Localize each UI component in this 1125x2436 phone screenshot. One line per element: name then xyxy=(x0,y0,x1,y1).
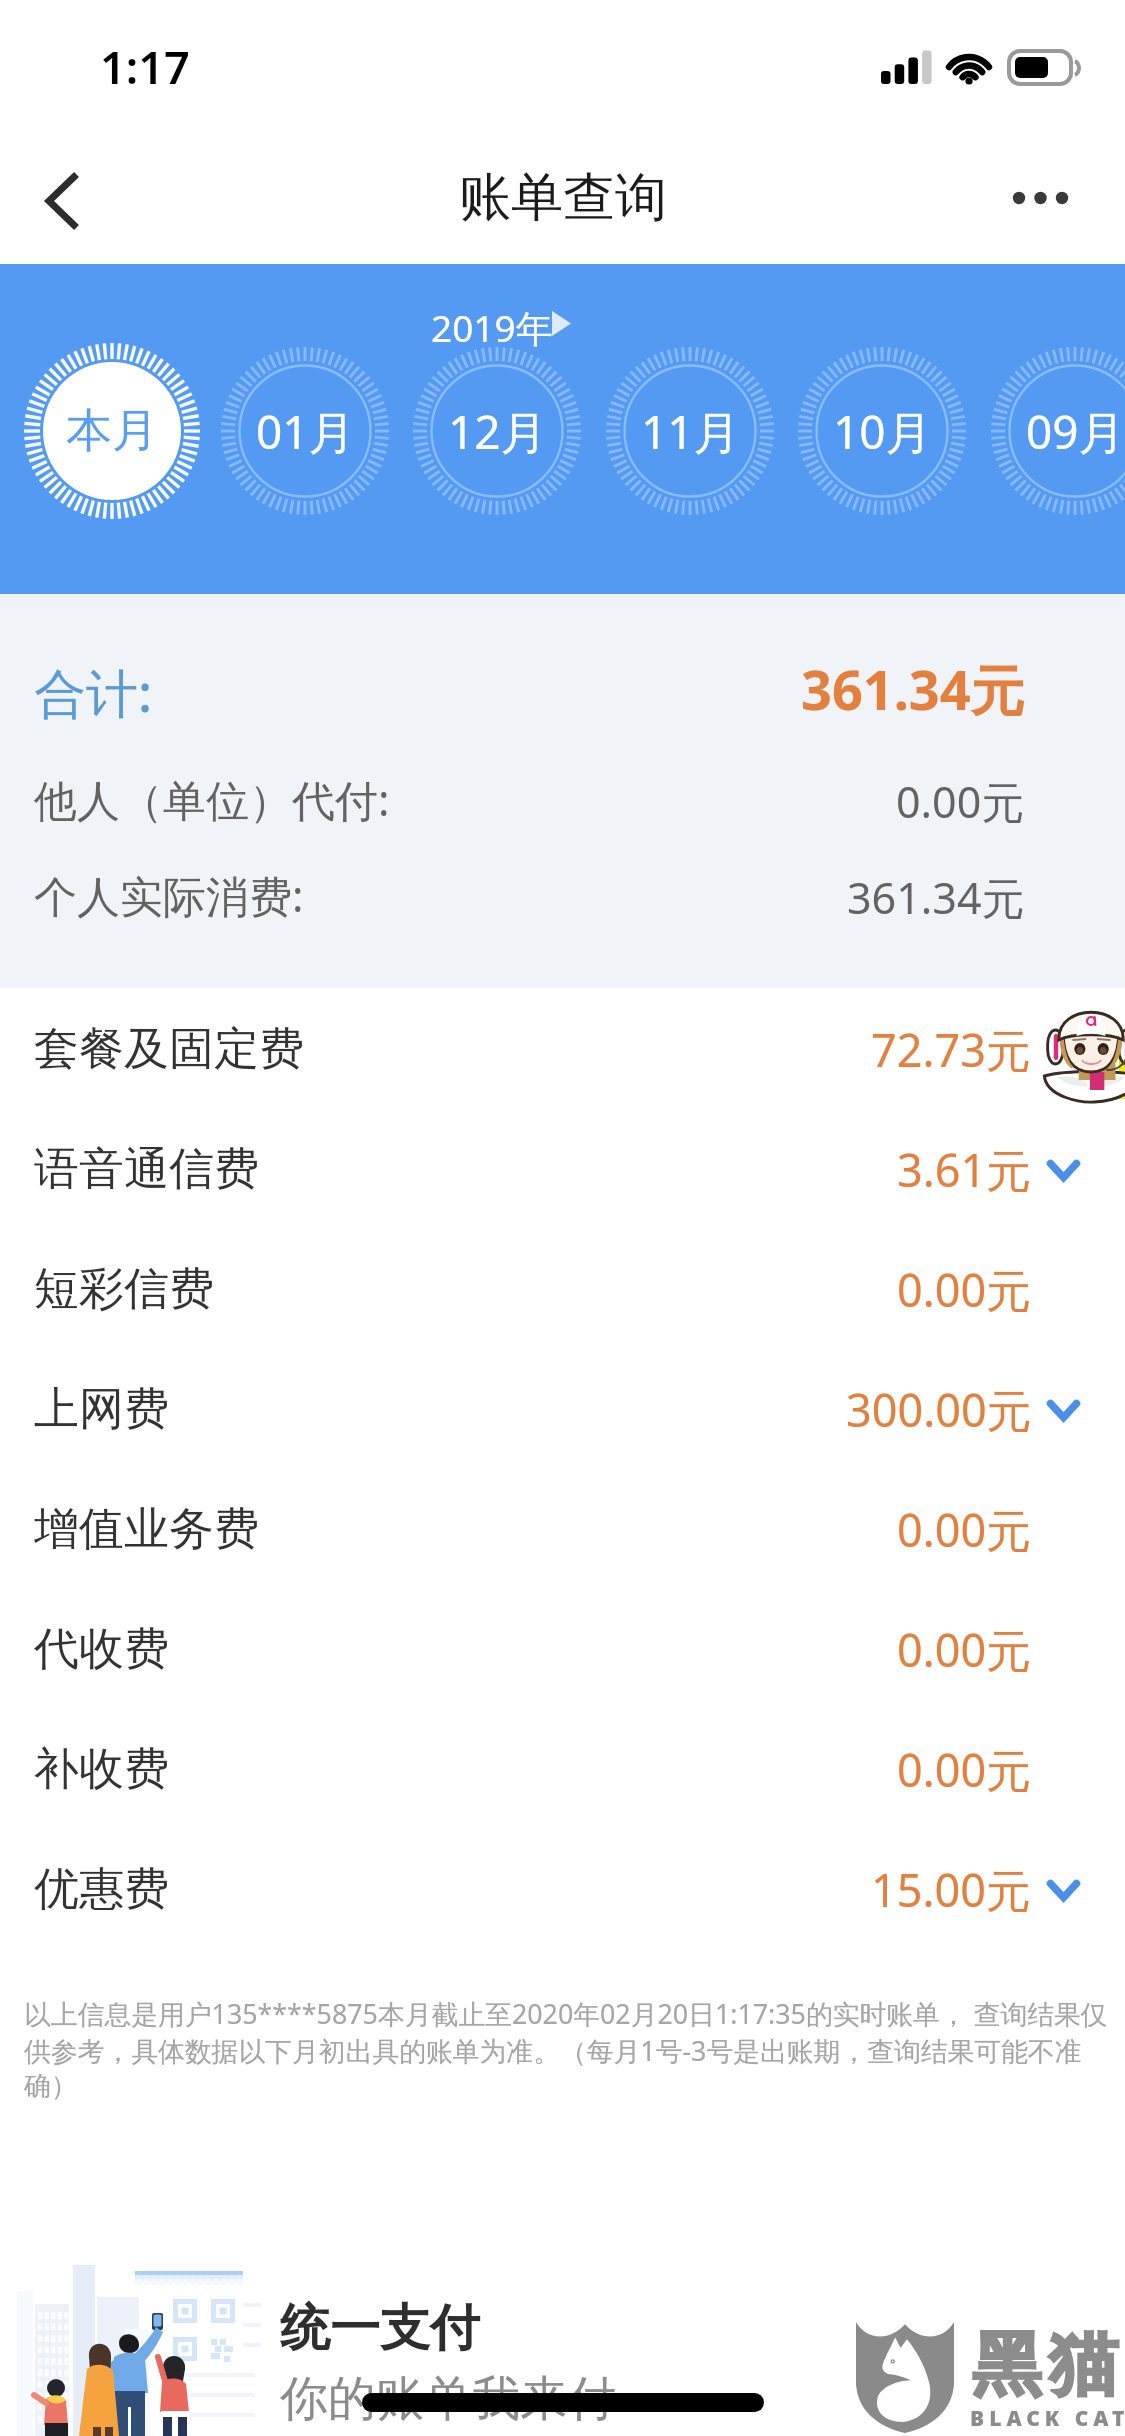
staticText: 合计: xyxy=(34,656,153,727)
button[interactable]: 11月 xyxy=(597,338,783,524)
staticText: 黑猫 xyxy=(968,2322,1122,2409)
staticText: 0.00元 xyxy=(897,1619,1032,1680)
staticText: 12月 xyxy=(448,400,547,463)
button[interactable]: Back xyxy=(0,132,130,264)
button[interactable]: 语音通信费 xyxy=(0,1109,1125,1229)
staticText: 上网费 xyxy=(34,1381,169,1438)
staticText: 语音通信费 xyxy=(34,1141,259,1198)
staticText: 0.00元 xyxy=(897,1739,1032,1800)
staticText: BLACK CAT xyxy=(970,2404,1125,2433)
staticText: 本月 xyxy=(66,402,158,460)
staticText: 代收费 xyxy=(34,1621,169,1678)
button[interactable]: 12月 xyxy=(404,338,590,524)
staticText: 300.00元 xyxy=(846,1379,1032,1440)
button[interactable]: 短彩信费 xyxy=(0,1229,1125,1349)
button[interactable]: 补收费 xyxy=(0,1709,1125,1829)
button[interactable]: 09月 xyxy=(982,338,1125,524)
staticText: 短彩信费 xyxy=(34,1261,214,1318)
button[interactable]: 优惠费 xyxy=(0,1829,1125,1949)
staticText: 确） xyxy=(24,2069,78,2103)
staticText: 0.00元 xyxy=(896,772,1025,831)
button[interactable]: 2019年 xyxy=(418,286,586,356)
staticText: 10月 xyxy=(833,400,932,463)
staticText: 11月 xyxy=(641,400,740,463)
staticText: 你的账单我来付 xyxy=(280,2369,616,2429)
staticText: 个人实际消费: xyxy=(34,866,304,925)
staticText: 0.00元 xyxy=(897,1499,1032,1560)
button[interactable]: 套餐及固定费 xyxy=(0,989,1125,1109)
staticText: 优惠费 xyxy=(34,1861,169,1918)
staticText: 增值业务费 xyxy=(34,1501,259,1558)
staticText: 补收费 xyxy=(34,1741,169,1798)
staticText: 统一支付 xyxy=(280,2297,480,2360)
button[interactable]: 代收费 xyxy=(0,1589,1125,1709)
button[interactable]: More options xyxy=(988,158,1094,238)
button[interactable]: 统一支付 xyxy=(0,2240,1125,2436)
staticText: 套餐及固定费 xyxy=(34,1021,304,1078)
staticText: 供参考，具体数据以下月初出具的账单为准。（每月1号-3号是出账期，查询结果可能不… xyxy=(24,2032,1082,2069)
button[interactable]: 上网费 xyxy=(0,1349,1125,1469)
staticText: 72.73元 xyxy=(871,1019,1032,1080)
button[interactable]: 10月 xyxy=(789,338,975,524)
staticText: 账单查询 xyxy=(459,165,667,231)
staticText: 01月 xyxy=(256,400,355,463)
staticText: 09月 xyxy=(1026,400,1125,463)
staticText: 3.61元 xyxy=(897,1139,1032,1200)
staticText: 15.00元 xyxy=(871,1859,1032,1920)
staticText: 2019年 xyxy=(431,302,553,353)
button[interactable]: 增值业务费 xyxy=(0,1469,1125,1589)
button[interactable]: 01月 xyxy=(212,338,398,524)
staticText: 361.34元 xyxy=(801,652,1025,726)
staticText: 1:17 xyxy=(100,36,190,97)
staticText: 0.00元 xyxy=(897,1259,1032,1320)
staticText: 361.34元 xyxy=(847,868,1025,927)
staticText: 以上信息是用户135****5875本月截止至2020年02月20日1:17:3… xyxy=(24,1995,1108,2032)
staticText: 他人（单位）代付: xyxy=(34,770,390,829)
button[interactable]: 本月 xyxy=(19,338,205,524)
